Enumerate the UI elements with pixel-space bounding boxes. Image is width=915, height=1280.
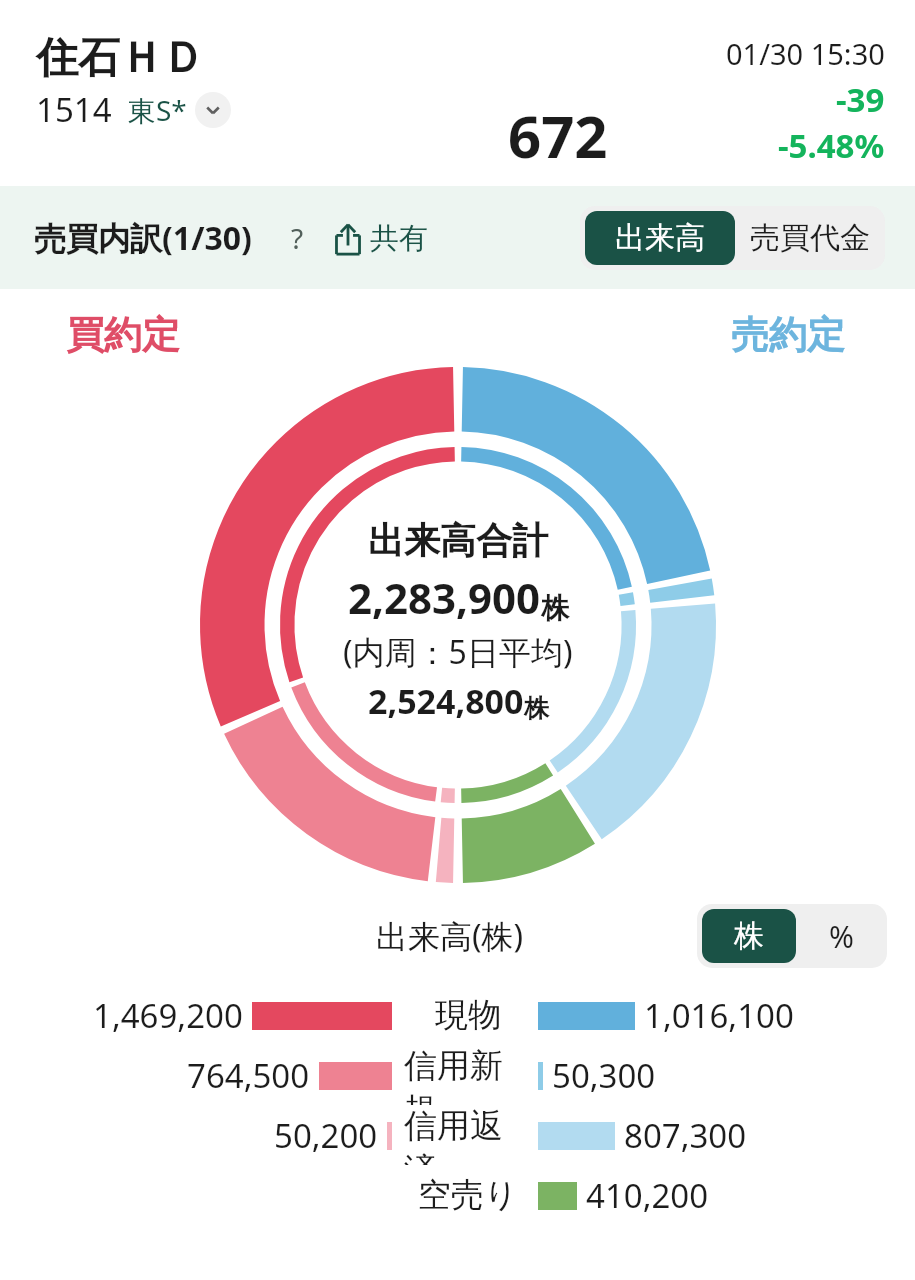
staticText: 住石ＨＤ — [36, 32, 204, 85]
staticText: 出来高合計 — [368, 518, 548, 563]
staticText: 1,016,100 — [644, 993, 794, 1038]
staticText: 売買代金 — [750, 219, 870, 257]
button[interactable]: 売買代金 — [735, 206, 885, 270]
staticText: 50,200 — [274, 1113, 378, 1158]
staticText: 株 — [734, 917, 764, 955]
staticText: (内周：5日平均) — [343, 630, 573, 674]
staticText: 01/30 15:30 — [726, 34, 885, 73]
button[interactable]: 出来高 — [585, 211, 735, 265]
staticText: 共有 — [370, 220, 428, 257]
staticText: 株 — [524, 693, 549, 724]
staticText: 信用新規 — [404, 1045, 532, 1105]
staticText: 信用返済 — [404, 1105, 532, 1165]
staticText: 1,469,200 — [93, 993, 243, 1038]
staticText: 売買内訳(1/30) — [34, 216, 252, 260]
staticText: -5.48% — [778, 123, 885, 168]
staticText: 410,200 — [586, 1173, 709, 1218]
staticText: 空売り — [418, 1174, 518, 1216]
staticText: 807,300 — [624, 1113, 747, 1158]
staticText: 株 — [541, 591, 569, 626]
button[interactable]: Market detail — [195, 92, 231, 128]
staticText: 売約定 — [731, 311, 845, 359]
staticText: 現物 — [435, 994, 501, 1036]
staticText: 東S* — [128, 91, 187, 129]
staticText: 50,300 — [552, 1053, 656, 1098]
staticText: -39 — [836, 77, 885, 122]
staticText: 2,283,900 — [348, 569, 541, 626]
button[interactable]: 764,500 — [0, 1045, 915, 1105]
staticText: % — [829, 916, 854, 957]
button[interactable]: % — [796, 904, 887, 968]
staticText: 出来高(株) — [376, 914, 524, 958]
staticText: ? — [291, 219, 304, 257]
button[interactable]: 1,469,200 — [0, 985, 915, 1045]
staticText: 764,500 — [187, 1053, 310, 1098]
button[interactable]: 共有 — [330, 220, 428, 257]
staticText: 2,524,800 — [368, 678, 524, 724]
button[interactable]: Help — [278, 219, 316, 257]
staticText: 1514 — [36, 87, 112, 132]
staticText: 出来高 — [615, 219, 705, 257]
button[interactable]: 空売り — [0, 1165, 915, 1225]
staticText: 672 — [508, 96, 608, 175]
button[interactable]: 50,200 — [0, 1105, 915, 1165]
staticText: 買約定 — [66, 311, 180, 359]
button[interactable]: 株 — [702, 909, 796, 963]
